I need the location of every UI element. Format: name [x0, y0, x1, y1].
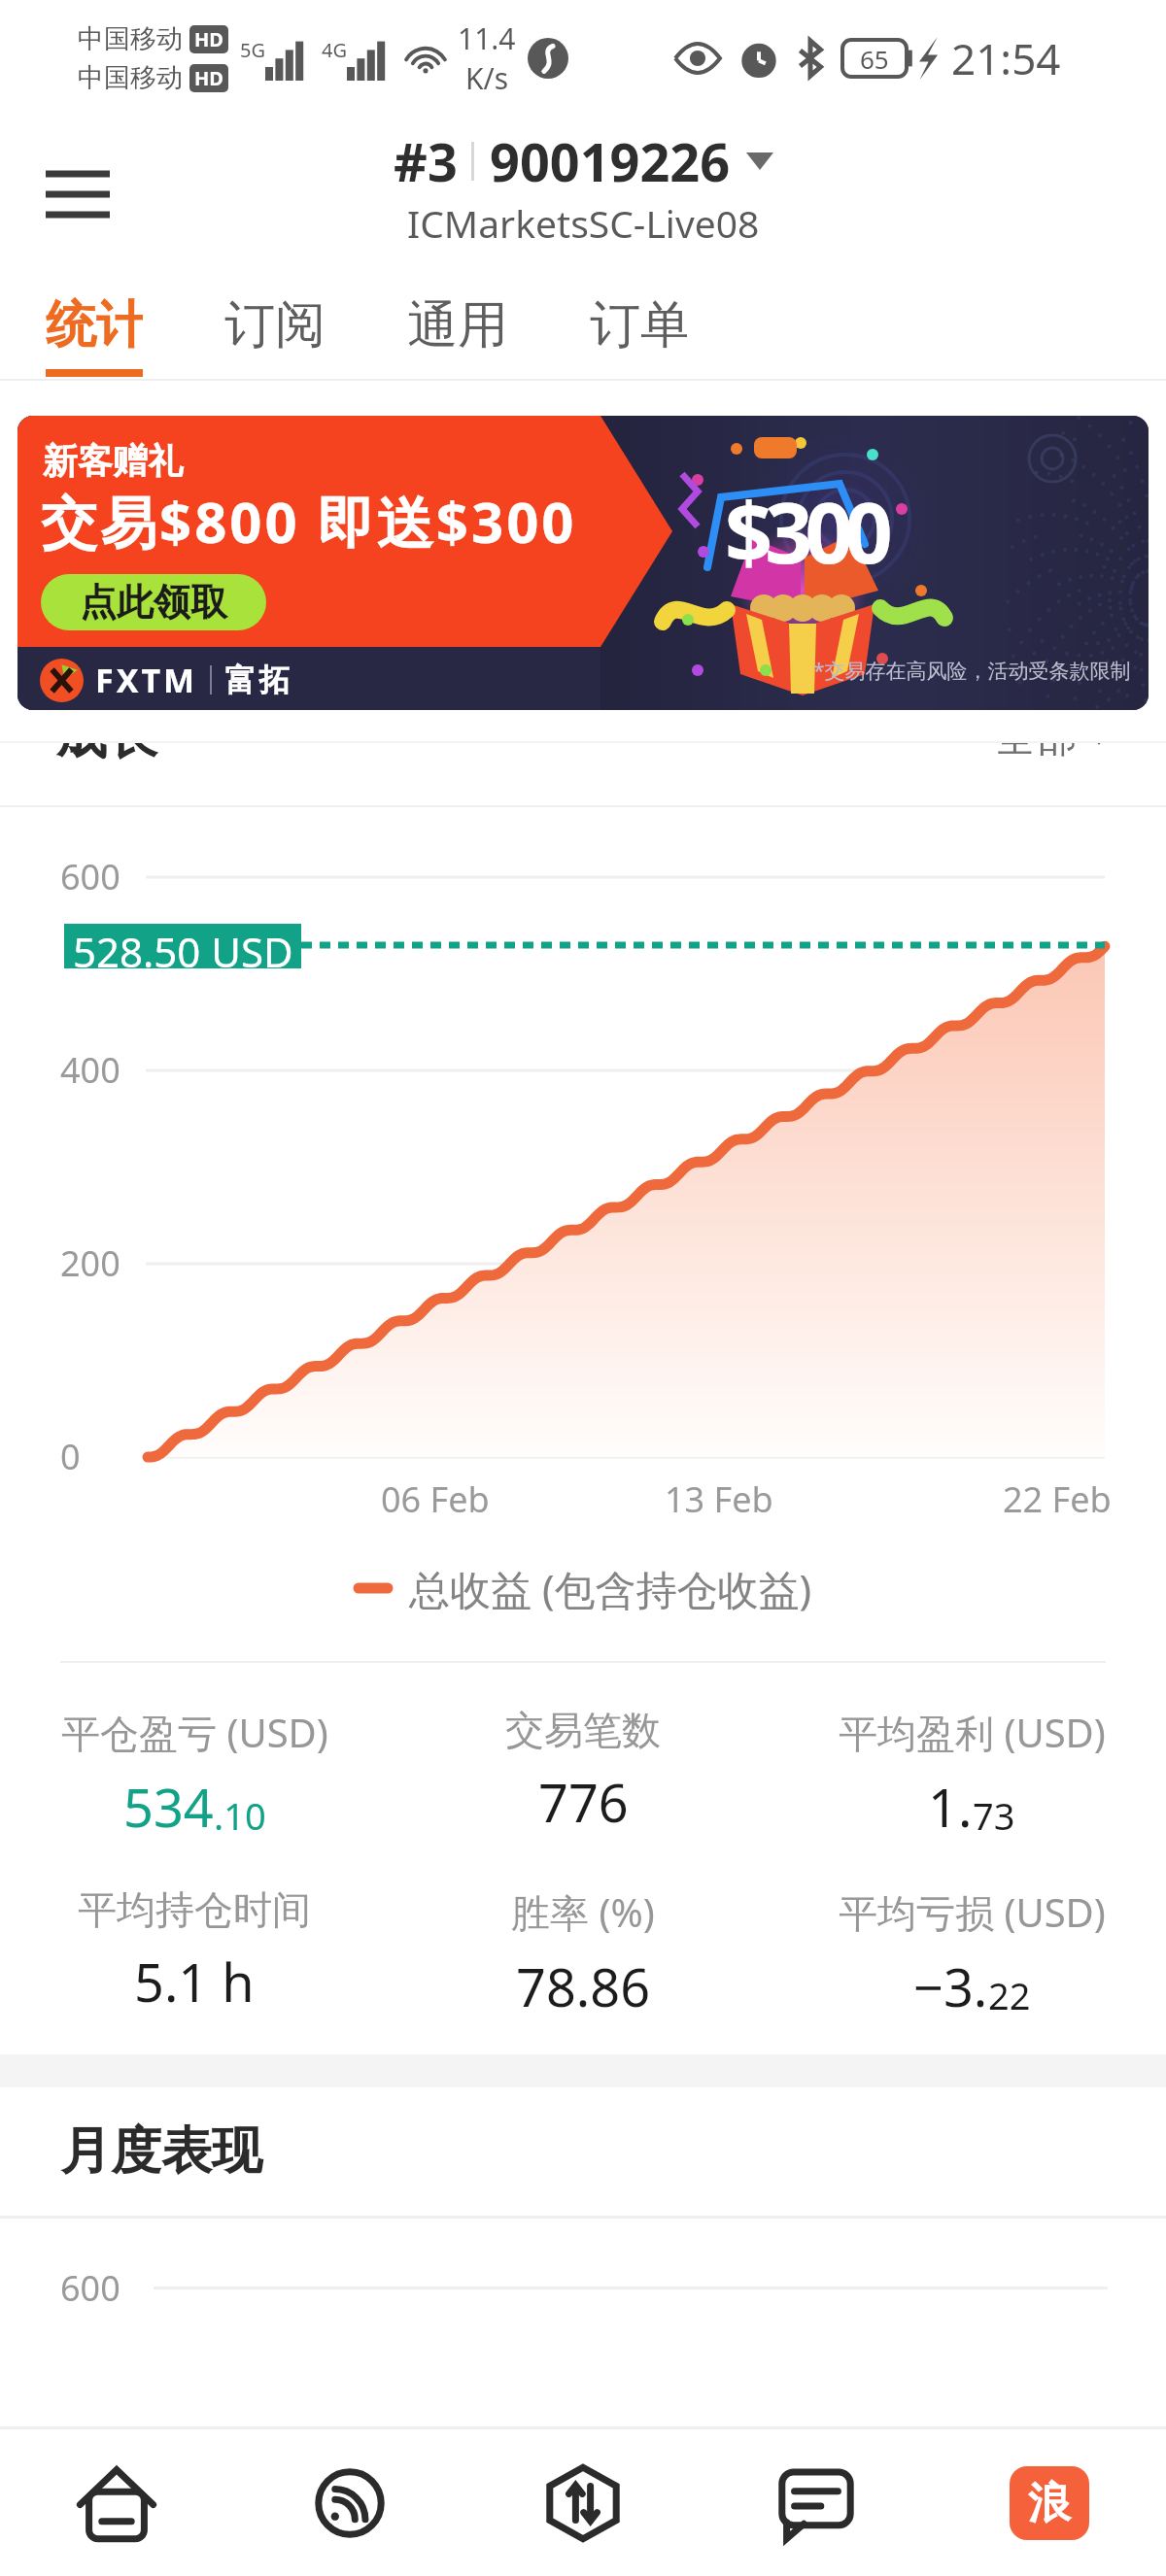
staticText: 平均亏损 (USD): [839, 1885, 1106, 1939]
staticText: 11.4: [458, 18, 516, 58]
button[interactable]: Home: [0, 2429, 233, 2576]
staticText: FXTM: [95, 658, 198, 702]
button[interactable]: 订阅: [224, 272, 322, 381]
staticText: 平仓盈亏 (USD): [61, 1706, 328, 1759]
button[interactable]: Quotes: [233, 2429, 466, 2576]
staticText: 90019226: [490, 125, 731, 197]
staticText: 65: [860, 42, 889, 76]
staticText: 4G: [322, 37, 347, 63]
staticText: 浪: [1028, 2477, 1071, 2530]
staticText: 5G: [240, 37, 265, 63]
staticText: *交易存在高风险，活动受条款限制: [813, 657, 1131, 685]
staticText: HD: [194, 26, 223, 52]
staticText: 13 Feb: [665, 1475, 773, 1523]
button[interactable]: 订单: [590, 272, 687, 381]
staticText: 600: [60, 853, 120, 900]
button[interactable]: 新客赠礼: [17, 416, 1149, 710]
staticText: 21:54: [951, 29, 1061, 87]
staticText: 200: [60, 1239, 120, 1287]
staticText: 平均盈利 (USD): [839, 1706, 1106, 1759]
button[interactable]: Accounts: [933, 2429, 1166, 2576]
staticText: 1.: [928, 1771, 973, 1843]
staticText: 73: [973, 1790, 1015, 1841]
staticText: 平均持仓时间: [78, 1885, 311, 1934]
staticText: 点此领取: [80, 579, 227, 626]
staticText: $300: [725, 474, 885, 588]
staticText: −3.: [913, 1950, 988, 2022]
button[interactable]: Trade: [466, 2429, 700, 2576]
staticText: 订阅: [224, 293, 322, 357]
staticText: #3: [394, 125, 458, 197]
staticText: .10: [214, 1790, 266, 1841]
button[interactable]: Menu: [39, 155, 117, 233]
staticText: 600: [60, 2264, 120, 2312]
button[interactable]: Messages: [700, 2429, 933, 2576]
staticText: 新客赠礼: [43, 439, 183, 483]
staticText: 534: [123, 1771, 214, 1843]
button[interactable]: 统计: [46, 272, 143, 381]
button[interactable]: #3: [394, 125, 773, 249]
staticText: K/s: [465, 58, 509, 98]
staticText: 5.1 h: [134, 1946, 255, 2017]
staticText: 总收益 (包含持仓收益): [409, 1561, 812, 1616]
staticText: 统计: [46, 293, 143, 357]
staticText: 通用: [407, 293, 504, 357]
staticText: 776: [538, 1766, 629, 1838]
staticText: 528.50 USD: [73, 924, 293, 968]
staticText: 中国移动: [78, 22, 183, 55]
button[interactable]: 通用: [407, 272, 504, 381]
staticText: 400: [60, 1046, 120, 1094]
staticText: 成长: [56, 704, 157, 768]
staticText: 0: [60, 1433, 81, 1480]
staticText: ICMarketsSC-Live08: [407, 197, 760, 249]
staticText: 富拓: [223, 661, 291, 699]
staticText: 78.86: [516, 1950, 651, 2022]
staticText: 22: [988, 1970, 1031, 2020]
staticText: 胜率 (%): [511, 1885, 655, 1939]
staticText: 22 Feb: [1003, 1475, 1112, 1523]
staticText: 订单: [590, 293, 687, 357]
staticText: 交易笔数: [505, 1706, 661, 1754]
staticText: 06 Feb: [381, 1475, 490, 1523]
button[interactable]: 点此领取: [41, 574, 266, 630]
staticText: 交易$800 即送$300: [41, 483, 577, 559]
staticText: 月度表现: [60, 2119, 262, 2184]
staticText: 全部: [995, 712, 1077, 763]
staticText: 中国移动: [78, 61, 183, 94]
staticText: HD: [194, 65, 223, 91]
